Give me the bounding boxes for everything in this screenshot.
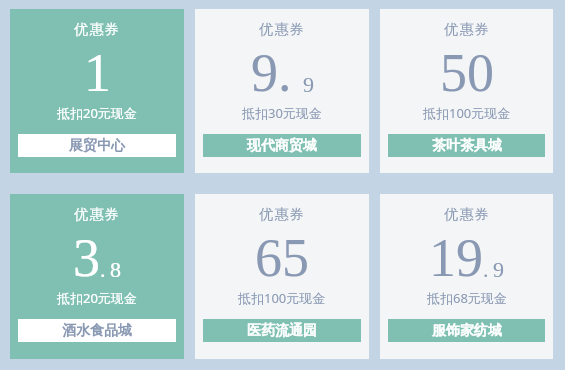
button[interactable]: 优惠券	[10, 194, 184, 359]
staticText: 抵扣68元现金	[427, 289, 507, 307]
staticText: 抵扣20元现金	[57, 104, 137, 122]
button[interactable]: 优惠券	[380, 9, 553, 173]
staticText: .	[100, 257, 106, 281]
staticText: 8	[110, 257, 121, 281]
staticText: 3	[73, 228, 100, 288]
staticText: 优惠券	[444, 21, 490, 39]
staticText: 9	[493, 257, 504, 281]
staticText: 1	[84, 43, 111, 103]
staticText: 19	[429, 228, 483, 288]
button[interactable]: 优惠券	[10, 9, 184, 173]
staticText: 服饰家纺城	[432, 322, 502, 340]
staticText: .	[483, 257, 489, 281]
button[interactable]: 酒水食品城	[18, 319, 176, 342]
staticText: 现代商贸城	[247, 137, 317, 155]
staticText: 优惠券	[259, 21, 305, 39]
staticText: 酒水食品城	[62, 322, 132, 340]
staticText: 抵扣20元现金	[57, 289, 137, 307]
staticText: 优惠券	[444, 206, 490, 224]
button[interactable]: 展贸中心	[18, 134, 176, 157]
staticText: 优惠券	[259, 206, 305, 224]
staticText: 抵扣100元现金	[423, 104, 511, 122]
staticText: 抵扣100元现金	[238, 289, 326, 307]
staticText: 65	[255, 228, 309, 288]
staticText: 抵扣30元现金	[242, 104, 322, 122]
button[interactable]: 茶叶茶具城	[388, 134, 545, 157]
staticText: 展贸中心	[69, 137, 125, 155]
staticText: 茶叶茶具城	[432, 137, 502, 155]
button[interactable]: 现代商贸城	[203, 134, 361, 157]
button[interactable]: 服饰家纺城	[388, 319, 545, 342]
staticText: 9	[303, 72, 314, 96]
staticText: 优惠券	[74, 206, 120, 224]
staticText: 50	[440, 43, 494, 103]
staticText: 优惠券	[74, 21, 120, 39]
button[interactable]: 优惠券	[195, 194, 369, 359]
staticText: 医药流通园	[247, 322, 317, 340]
button[interactable]: 优惠券	[380, 194, 553, 359]
button[interactable]: 医药流通园	[203, 319, 361, 342]
button[interactable]: 优惠券	[195, 9, 369, 173]
staticText: 9.	[251, 43, 292, 103]
